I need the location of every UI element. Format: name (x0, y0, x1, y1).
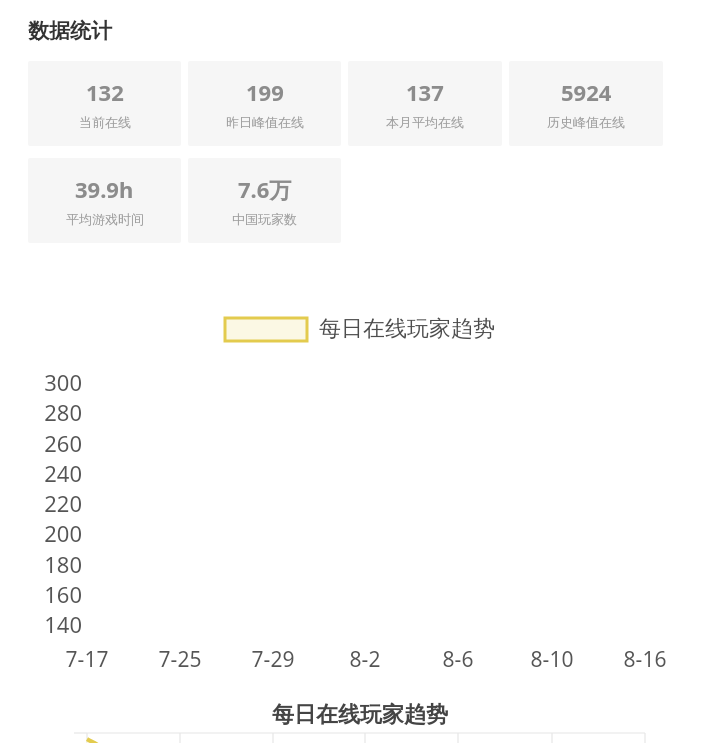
button[interactable]: 每日在线玩家趋势 (0, 315, 720, 343)
staticText: 300 (24, 367, 82, 397)
staticText: 5924 (561, 77, 612, 107)
staticText: 7-17 (47, 645, 127, 674)
button[interactable]: 132 (28, 61, 181, 146)
button[interactable]: 5924 (509, 61, 663, 146)
staticText: 199 (246, 77, 284, 107)
staticText: 历史峰值在线 (547, 114, 625, 130)
staticText: 180 (24, 549, 82, 579)
staticText: 137 (406, 77, 444, 107)
staticText: 260 (24, 428, 82, 458)
staticText: 8-10 (512, 645, 592, 674)
staticText: 8-16 (605, 645, 685, 674)
staticText: 132 (86, 77, 124, 107)
staticText: 280 (24, 397, 82, 427)
staticText: 7.6万 (238, 174, 292, 204)
staticText: 昨日峰值在线 (226, 114, 304, 130)
staticText: 8-6 (418, 645, 498, 674)
staticText: 本月平均在线 (386, 114, 464, 130)
staticText: 200 (24, 518, 82, 548)
staticText: 220 (24, 488, 82, 518)
button[interactable]: 199 (188, 61, 341, 146)
staticText: 每日在线玩家趋势 (272, 701, 448, 729)
button[interactable]: 7.6万 (188, 158, 341, 243)
staticText: 160 (24, 579, 82, 609)
staticText: 数据统计 (28, 18, 112, 44)
staticText: 8-2 (325, 645, 405, 674)
staticText: 7-29 (233, 645, 313, 674)
staticText: 每日在线玩家趋势 (319, 315, 495, 343)
staticText: 140 (24, 609, 82, 639)
staticText: 当前在线 (79, 114, 131, 130)
button[interactable]: 137 (348, 61, 502, 146)
staticText: 中国玩家数 (232, 211, 297, 227)
staticText: 240 (24, 458, 82, 488)
staticText: 7-25 (140, 645, 220, 674)
staticText: 39.9h (75, 174, 134, 204)
staticText: 平均游戏时间 (66, 211, 144, 227)
button[interactable]: 39.9h (28, 158, 181, 243)
